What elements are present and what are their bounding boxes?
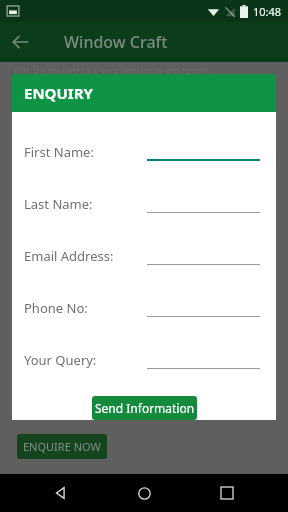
button[interactable]: Home xyxy=(122,474,166,512)
button[interactable]: Last Name: xyxy=(12,178,276,230)
staticText: First Name: xyxy=(24,143,94,161)
button[interactable]: Email Address: xyxy=(12,230,276,282)
button[interactable]: Recent apps xyxy=(205,474,249,512)
staticText: ENQUIRE NOW xyxy=(23,439,101,454)
staticText: Send Information xyxy=(95,400,195,416)
staticText: Last Name: xyxy=(24,195,93,213)
staticText: With the greatest care, we manufacture a… xyxy=(14,65,209,76)
staticText: 10:48 xyxy=(253,4,282,19)
button[interactable]: ENQUIRE NOW xyxy=(17,434,107,459)
staticText: Window Craft xyxy=(64,31,168,53)
button[interactable]: Send Information xyxy=(92,396,197,420)
staticText: ENQUIRY xyxy=(24,83,93,103)
staticText: Phone No: xyxy=(24,299,88,317)
staticText: Your Query: xyxy=(24,351,97,369)
button[interactable]: Back xyxy=(39,474,83,512)
button[interactable]: First Name: xyxy=(12,126,276,178)
button[interactable]: Your Query: xyxy=(12,334,276,386)
button[interactable]: Back xyxy=(0,22,40,62)
staticText: Email Address: xyxy=(24,247,114,265)
button[interactable]: Phone No: xyxy=(12,282,276,334)
